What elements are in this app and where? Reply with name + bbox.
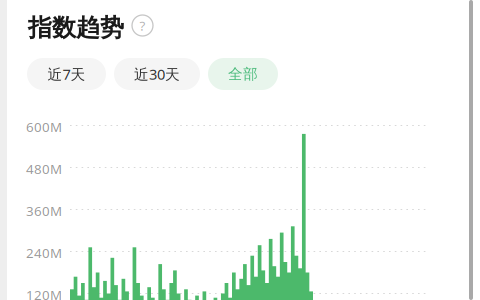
staticText: ? [139,17,145,34]
staticText: 近7天 [47,64,85,84]
button[interactable]: 指数趋势 [28,13,124,42]
staticText: 近30天 [134,64,180,84]
staticText: 360M [26,202,62,220]
staticText: 480M [26,160,62,178]
staticText: 600M [26,118,62,136]
button[interactable]: 近30天 [114,58,200,90]
button[interactable]: 近7天 [27,58,106,90]
button[interactable]: 指数趋势说明 [132,15,153,36]
staticText: 指数趋势 [28,13,124,42]
staticText: 全部 [228,65,258,83]
staticText: 240M [26,244,62,262]
button[interactable]: 全部 [208,58,278,90]
staticText: 120M [26,286,62,300]
